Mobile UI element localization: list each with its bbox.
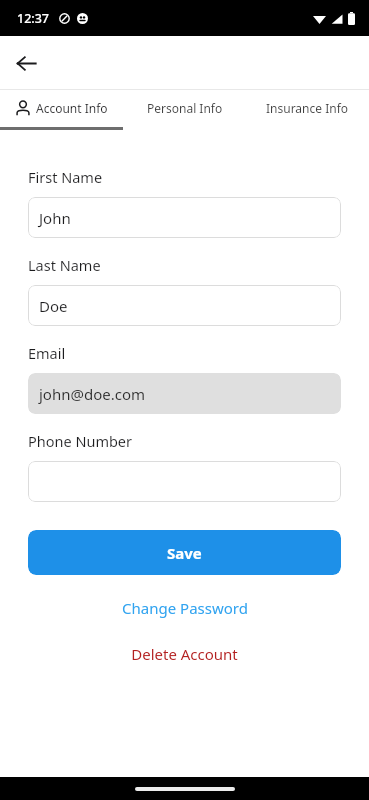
staticText: Doe: [39, 296, 68, 316]
button[interactable]: [28, 461, 341, 502]
button[interactable]: Account Info: [0, 90, 123, 130]
button[interactable]: John: [28, 197, 341, 238]
button[interactable]: Back: [8, 45, 44, 81]
staticText: Delete Account: [131, 644, 238, 664]
staticText: John: [39, 208, 71, 228]
staticText: Phone Number: [28, 431, 133, 451]
staticText: Insurance Info: [266, 100, 349, 116]
staticText: 12:37: [17, 10, 50, 27]
staticText: john@doe.com: [39, 384, 146, 404]
button[interactable]: Insurance Info: [246, 90, 369, 130]
staticText: Account Info: [36, 100, 108, 116]
button[interactable]: Personal Info: [123, 90, 246, 130]
staticText: Personal Info: [147, 100, 223, 116]
button[interactable]: Delete Account: [28, 644, 341, 664]
staticText: Save: [167, 543, 202, 563]
button[interactable]: Change Password: [28, 598, 341, 618]
staticText: Last Name: [28, 255, 101, 275]
button[interactable]: Save: [28, 530, 341, 575]
button[interactable]: Doe: [28, 285, 341, 326]
button[interactable]: john@doe.com: [28, 373, 341, 414]
staticText: Change Password: [122, 598, 248, 618]
staticText: Email: [28, 343, 66, 363]
staticText: First Name: [28, 167, 103, 187]
